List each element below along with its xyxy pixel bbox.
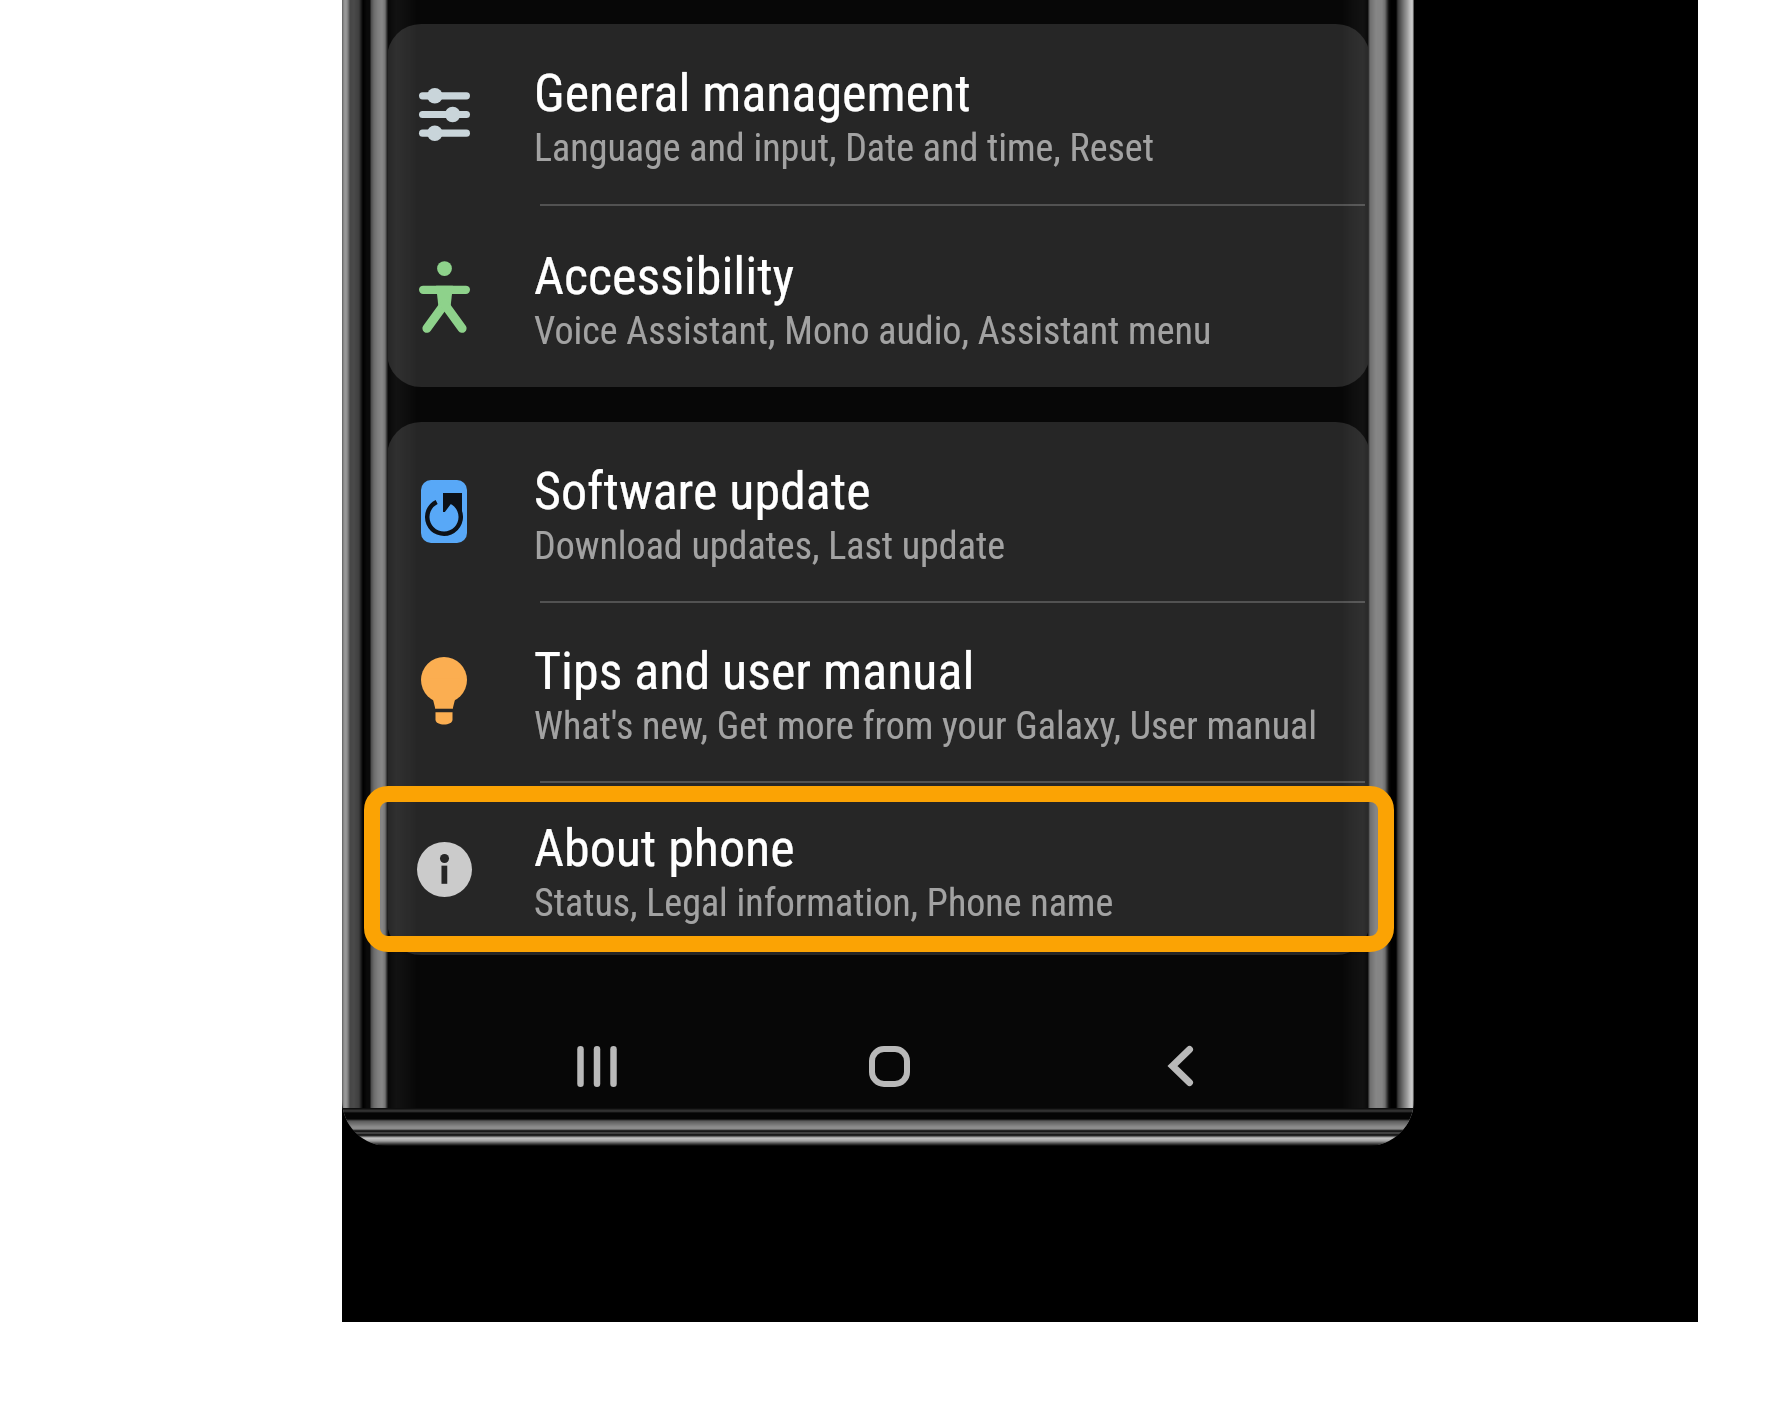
button[interactable]: Back — [1131, 1016, 1231, 1116]
staticText: What's new, Get more from your Galaxy, U… — [534, 704, 1317, 749]
button[interactable]: Home — [839, 1016, 939, 1116]
button[interactable]: Accessibility — [387, 206, 1370, 387]
staticText: Status, Legal information, Phone name — [534, 881, 1114, 926]
staticText: Accessibility — [534, 246, 795, 307]
staticText: About phone — [534, 818, 795, 879]
staticText: Voice Assistant, Mono audio, Assistant m… — [534, 309, 1212, 354]
staticText: Tips and user manual — [534, 641, 975, 702]
staticText: Language and input, Date and time, Reset — [534, 126, 1154, 171]
button[interactable]: Software update — [387, 422, 1370, 601]
button[interactable]: Tips and user manual — [387, 603, 1370, 781]
staticText: Software update — [534, 461, 871, 522]
staticText: Download updates, Last update — [534, 524, 1005, 569]
button[interactable]: General management — [387, 24, 1370, 204]
button[interactable]: Recent apps — [547, 1016, 647, 1116]
staticText: General management — [534, 63, 971, 124]
button[interactable]: About phone — [387, 783, 1370, 955]
